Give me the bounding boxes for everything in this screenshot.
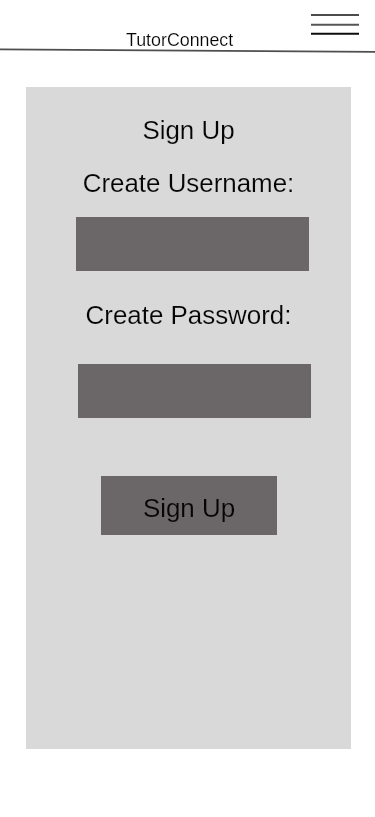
staticText: Create Username: (26, 169, 351, 198)
staticText: TutorConnect (126, 30, 234, 50)
button[interactable]: Menu (303, 7, 367, 42)
button[interactable]: TutorConnect (118, 29, 242, 51)
staticText: Create Password: (26, 301, 351, 330)
staticText: Sign Up (101, 494, 277, 523)
button[interactable]: Sign Up (101, 476, 277, 535)
staticText: Sign Up (26, 116, 351, 145)
